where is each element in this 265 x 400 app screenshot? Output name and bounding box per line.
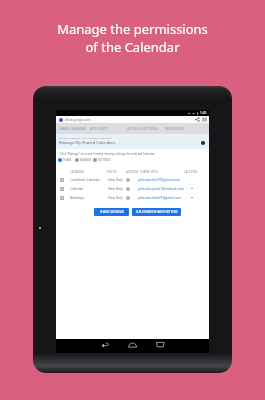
staticText: SHARE CALENDAR > MY SHARED CALENDARS: [59, 136, 112, 139]
button[interactable]: SHARE: [58, 158, 72, 162]
staticText: SUB-SHARED/SHARED WITH ME: [136, 210, 178, 214]
staticText: SHARE CALENDAR: [100, 210, 124, 214]
staticText: of the Calendar: [85, 38, 180, 56]
button[interactable]: SUB-SHARED/SHARED WITH ME: [132, 208, 181, 216]
button[interactable]: APP SCRIPT: [90, 127, 108, 131]
button[interactable]: SHARE CALENDAR: [94, 208, 129, 216]
button[interactable]: HIDE/DELETE: [165, 127, 185, 131]
staticText: ACCOUNT: [126, 170, 139, 174]
button[interactable]: MANAGE: [75, 158, 92, 162]
staticText: MANAGE: [80, 158, 92, 162]
button[interactable]: SHARE CALENDAR: [59, 127, 86, 131]
staticText: SHARED WITH: [140, 170, 158, 174]
staticText: APP SCRIPT: [90, 127, 108, 131]
staticText: john.doe.data97@gmail.com: [138, 196, 181, 200]
staticText: DETAILS & SETTINGS: [127, 127, 158, 131]
staticText: SHARE CALENDAR: [59, 127, 86, 131]
staticText: john.doe.jane21@outlook.com: [138, 187, 184, 191]
button[interactable]: Help: [201, 141, 205, 145]
staticText: SETTINGS: [98, 158, 111, 162]
button[interactable]: Recent apps: [156, 338, 165, 350]
staticText: Birthdays: [70, 196, 85, 200]
staticText: Lunchtime Calendar: [70, 178, 101, 182]
button[interactable]: Menu: [202, 117, 207, 122]
button[interactable]: Birthdays: [56, 193, 209, 202]
staticText: drive.google.com: [65, 118, 91, 122]
button[interactable]: Home: [128, 338, 137, 350]
staticText: View Only: [108, 196, 123, 200]
button[interactable]: Back: [101, 338, 110, 350]
staticText: HIDE/DELETE: [165, 127, 185, 131]
staticText: Click "Manage" to re-set / revoke sharin…: [60, 152, 155, 156]
staticText: Manage the permissions: [57, 20, 208, 38]
staticText: 1:43: [200, 111, 207, 115]
button[interactable]: Lunchtime Calendar: [56, 175, 209, 184]
button[interactable]: Share: [195, 117, 200, 122]
staticText: CALENDAR: [70, 170, 84, 174]
staticText: Manage My Shared Calendars: [59, 140, 116, 145]
staticText: SHARE: [63, 158, 72, 162]
button[interactable]: DETAILS & SETTINGS: [127, 127, 158, 131]
button[interactable]: Calendar: [56, 184, 209, 193]
staticText: LAST SYNC: [184, 170, 198, 174]
staticText: View Only: [108, 187, 123, 191]
staticText: View Only: [108, 178, 123, 182]
staticText: john.doe.test97@gmail.com: [138, 178, 180, 182]
staticText: Calendar: [70, 187, 84, 191]
staticText: RIGHTS: [107, 170, 117, 174]
button[interactable]: SETTINGS: [93, 158, 111, 162]
